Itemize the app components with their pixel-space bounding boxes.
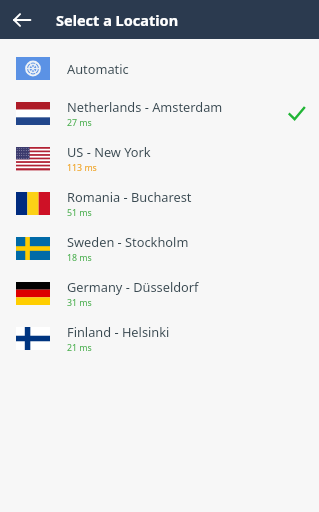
- button[interactable]: US - New York: [0, 136, 319, 181]
- button[interactable]: Back: [8, 6, 36, 34]
- staticText: Netherlands - Amsterdam: [67, 98, 223, 115]
- button[interactable]: Germany - Düsseldorf: [0, 271, 319, 316]
- staticText: Romania - Bucharest: [67, 188, 192, 205]
- staticText: Finland - Helsinki: [67, 323, 170, 340]
- button[interactable]: Romania - Bucharest: [0, 181, 319, 226]
- staticText: 21 ms: [67, 342, 92, 354]
- staticText: 51 ms: [67, 207, 92, 219]
- button[interactable]: Automatic: [0, 46, 319, 91]
- staticText: 27 ms: [67, 117, 92, 129]
- button[interactable]: Sweden - Stockholm: [0, 226, 319, 271]
- staticText: Germany - Düsseldorf: [67, 278, 199, 295]
- staticText: US - New York: [67, 143, 151, 160]
- staticText: Sweden - Stockholm: [67, 233, 189, 250]
- button[interactable]: Netherlands - Amsterdam: [0, 91, 319, 136]
- staticText: 113 ms: [67, 162, 97, 174]
- button[interactable]: Finland - Helsinki: [0, 316, 319, 361]
- staticText: Automatic: [67, 60, 129, 77]
- staticText: 18 ms: [67, 252, 92, 264]
- staticText: 31 ms: [67, 297, 92, 309]
- staticText: Select a Location: [56, 10, 179, 30]
